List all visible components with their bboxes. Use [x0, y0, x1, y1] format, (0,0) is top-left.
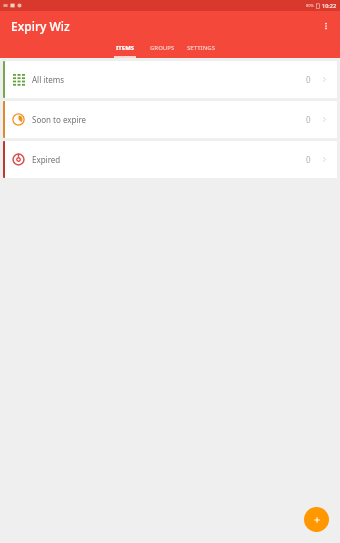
staticText: 0: [306, 114, 311, 125]
button[interactable]: ITEMS: [113, 44, 137, 58]
staticText: ITEMS: [116, 44, 135, 52]
staticText: Expired: [32, 154, 306, 165]
button[interactable]: SETTINGS: [186, 44, 216, 58]
staticText: GROUPS: [150, 44, 175, 52]
button[interactable]: Expired: [3, 141, 337, 178]
button[interactable]: All items: [3, 61, 337, 98]
button[interactable]: Soon to expire: [3, 101, 337, 138]
button[interactable]: GROUPS: [149, 44, 176, 58]
staticText: All items: [32, 74, 306, 85]
staticText: 80%: [306, 3, 314, 8]
button[interactable]: More options: [311, 11, 340, 40]
staticText: 0: [306, 74, 311, 85]
button[interactable]: Add item: [304, 507, 329, 532]
staticText: Expiry Wiz: [11, 18, 70, 34]
staticText: 10:22: [322, 2, 337, 9]
staticText: Soon to expire: [32, 114, 306, 125]
staticText: SETTINGS: [187, 44, 215, 52]
staticText: 0: [306, 154, 311, 165]
